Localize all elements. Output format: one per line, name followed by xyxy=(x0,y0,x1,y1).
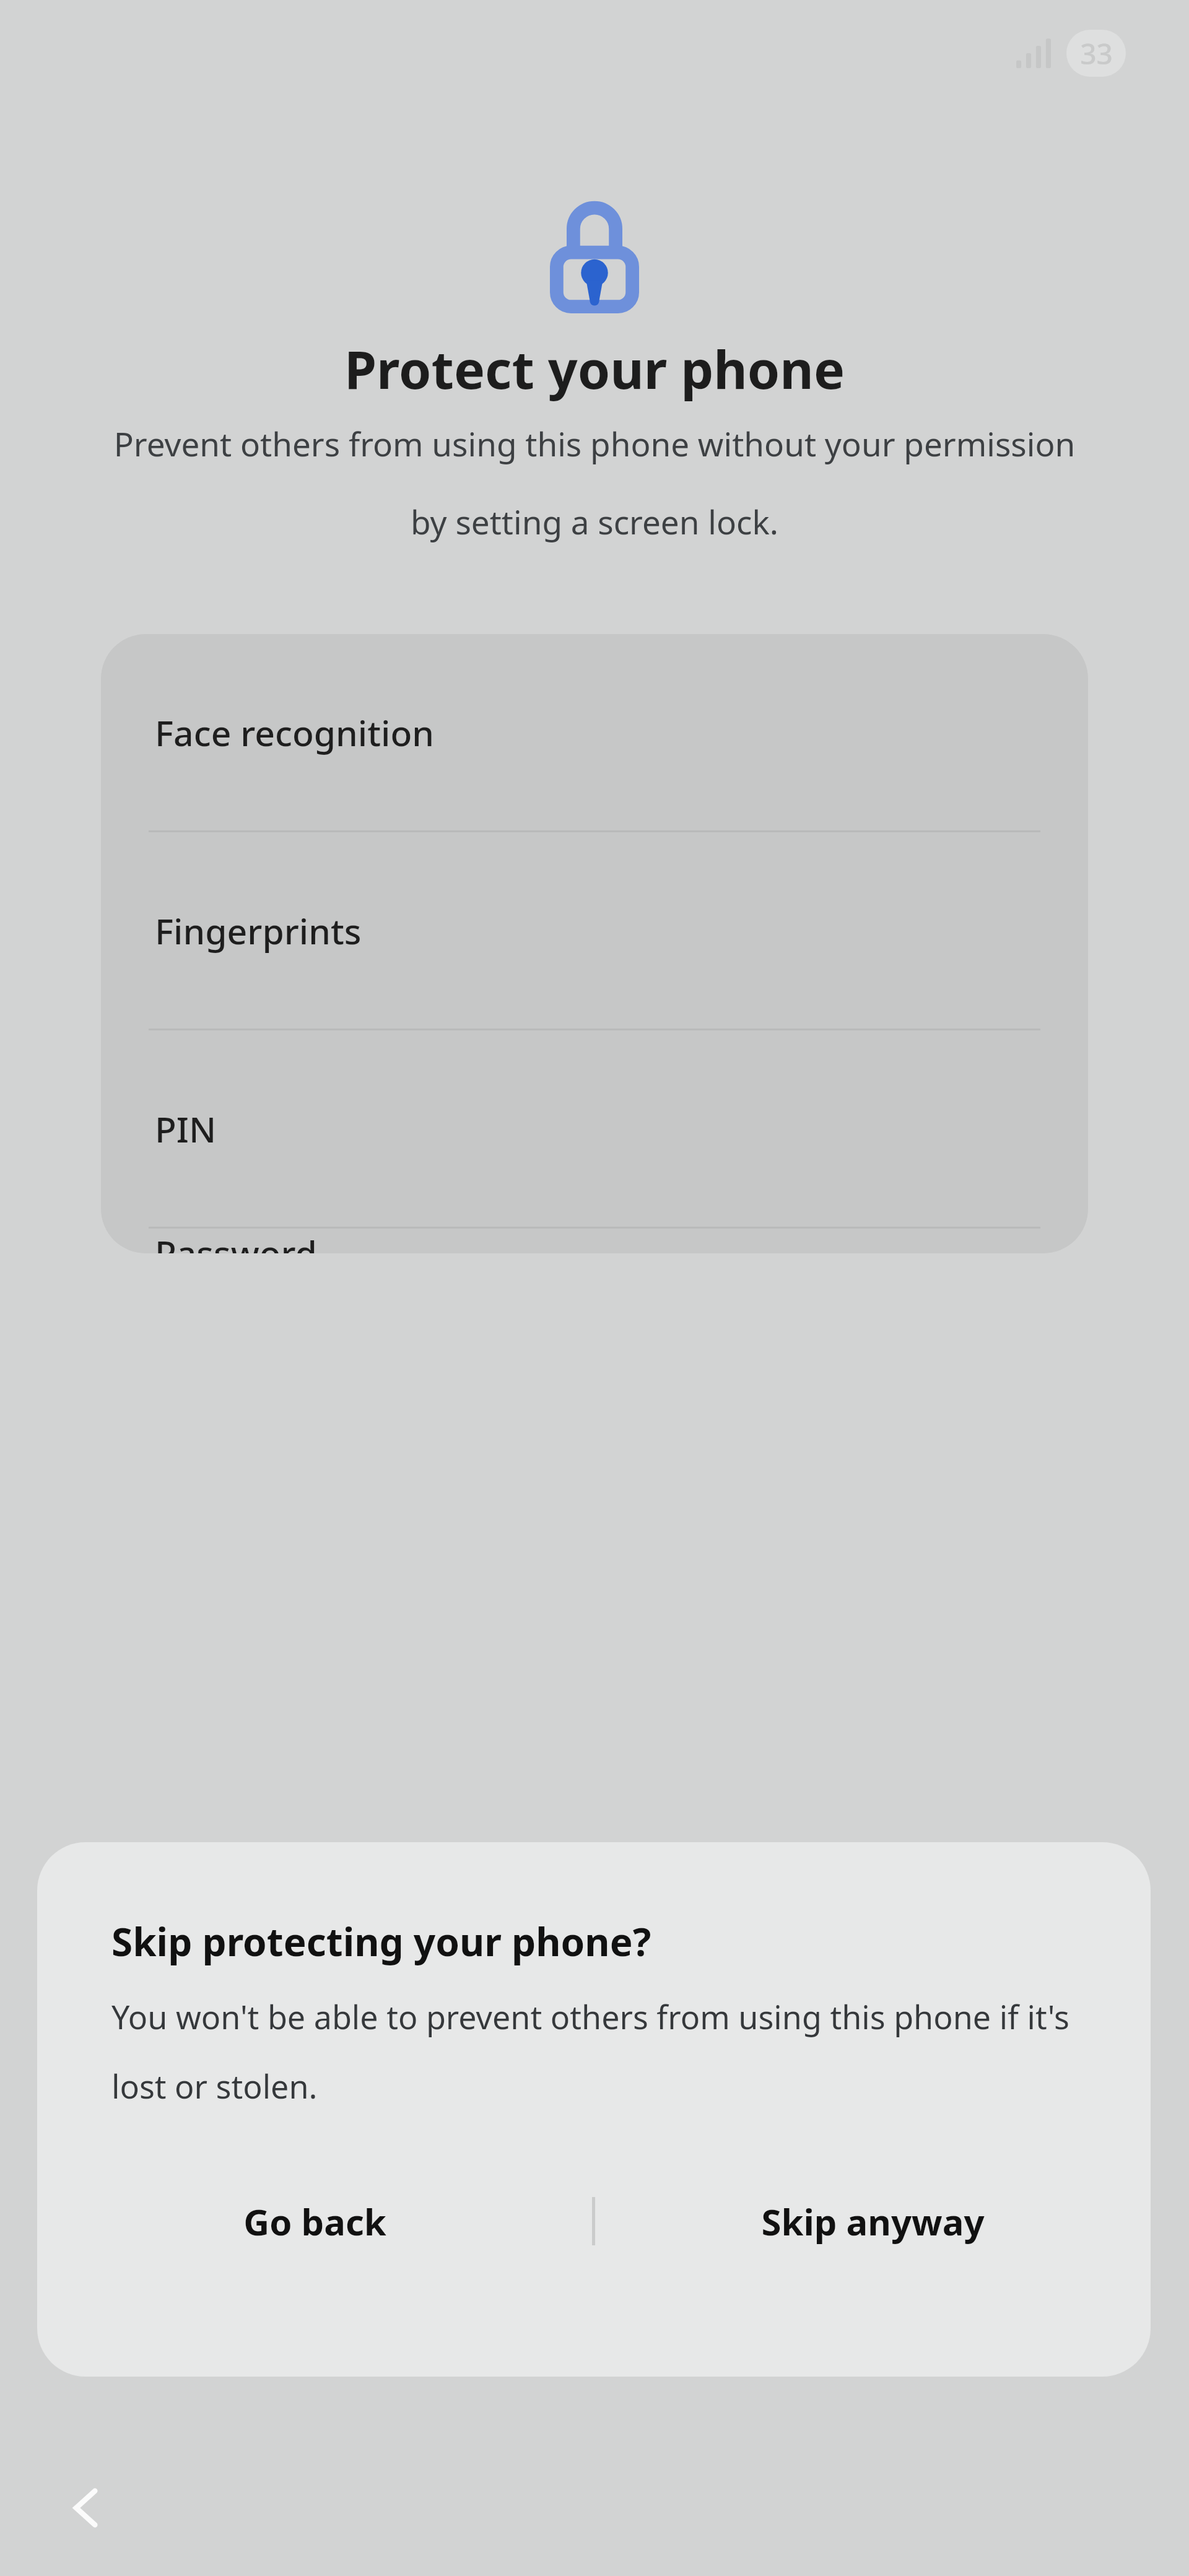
staticText: Go back xyxy=(243,2197,386,2246)
staticText: Skip anyway xyxy=(761,2197,985,2246)
button[interactable]: Password xyxy=(101,1229,1088,1253)
button[interactable]: Face recognition xyxy=(101,634,1088,830)
button[interactable]: Back xyxy=(37,2458,136,2557)
staticText: 33 xyxy=(1080,34,1113,73)
staticText: Skip protecting your phone? xyxy=(111,1915,1101,1967)
staticText: You won't be able to prevent others from… xyxy=(111,1995,1082,2108)
staticText: Fingerprints xyxy=(155,907,362,955)
staticText: Prevent others from using this phone wit… xyxy=(99,421,1090,544)
staticText: Face recognition xyxy=(155,708,434,757)
button[interactable]: Skip anyway xyxy=(595,2162,1151,2280)
button[interactable]: Fingerprints xyxy=(101,832,1088,1029)
button[interactable]: PIN xyxy=(101,1030,1088,1227)
staticText: PIN xyxy=(155,1105,217,1153)
button[interactable]: Go back xyxy=(37,2162,592,2280)
staticText: Password xyxy=(155,1229,317,1253)
staticText: Protect your phone xyxy=(0,333,1189,404)
